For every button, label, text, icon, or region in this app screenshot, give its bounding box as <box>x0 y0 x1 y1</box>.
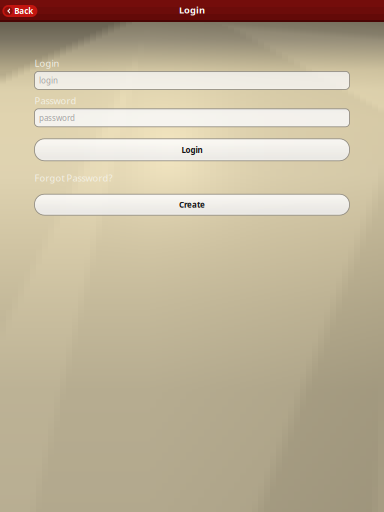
staticText: Login <box>34 57 59 69</box>
staticText: login <box>39 75 58 86</box>
staticText: Login <box>181 144 202 155</box>
button[interactable]: Login <box>34 139 349 161</box>
staticText: Back <box>14 6 33 16</box>
button[interactable]: Create <box>34 194 349 215</box>
staticText: password <box>39 112 75 123</box>
staticText: Login <box>179 4 205 16</box>
staticText: Create <box>179 199 205 210</box>
button[interactable]: Back <box>2 5 37 17</box>
staticText: Password <box>34 94 76 107</box>
staticText: Forgot Password? <box>34 172 112 184</box>
